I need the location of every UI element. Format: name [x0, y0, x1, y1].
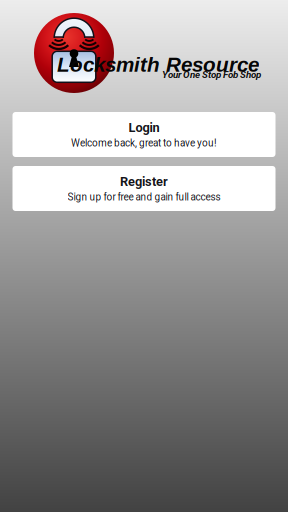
staticText: Locksmith Resource — [57, 53, 259, 76]
button[interactable]: Register — [12, 166, 275, 211]
button[interactable]: Login — [12, 112, 275, 157]
staticText: Login — [128, 120, 159, 135]
staticText: Register — [120, 174, 168, 189]
staticText: Welcome back, great to have you! — [71, 137, 217, 149]
staticText: Sign up for free and gain full access — [67, 191, 220, 203]
staticText: Your One Stop Fob Shop — [162, 69, 261, 80]
